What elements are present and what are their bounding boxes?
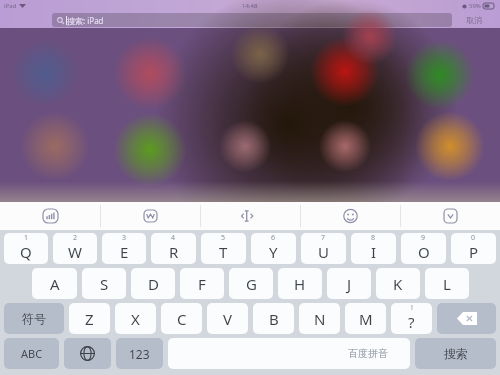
staticText: 8: [371, 233, 376, 243]
button[interactable]: Voice: [101, 202, 200, 230]
button[interactable]: !: [391, 303, 432, 334]
staticText: S: [100, 274, 109, 294]
staticText: B: [269, 309, 279, 329]
button[interactable]: Handwriting: [0, 202, 100, 230]
staticText: W: [68, 242, 82, 262]
staticText: K: [393, 274, 403, 294]
staticText: 59%: [469, 2, 481, 10]
staticText: 取消: [466, 15, 482, 25]
button[interactable]: 6: [251, 233, 296, 264]
staticText: J: [347, 274, 352, 294]
staticText: 3: [122, 233, 127, 243]
button[interactable]: 123: [116, 338, 163, 369]
staticText: Q: [20, 242, 32, 262]
button[interactable]: D: [131, 268, 175, 299]
button[interactable]: F: [180, 268, 224, 299]
button[interactable]: 百度拼音: [168, 338, 410, 369]
staticText: V: [223, 309, 233, 329]
button[interactable]: K: [376, 268, 420, 299]
staticText: M: [359, 309, 373, 329]
staticText: !: [411, 303, 413, 313]
staticText: ?: [408, 312, 415, 332]
staticText: A: [50, 274, 60, 294]
button[interactable]: V: [207, 303, 248, 334]
staticText: U: [318, 242, 329, 262]
button[interactable]: Emoji: [301, 202, 400, 230]
staticText: R: [169, 242, 179, 262]
button[interactable]: 取消: [452, 11, 496, 28]
staticText: Y: [269, 242, 278, 262]
staticText: H: [294, 274, 306, 294]
staticText: P: [469, 242, 479, 262]
staticText: 123: [129, 346, 150, 362]
staticText: 搜索: [444, 346, 468, 361]
button[interactable]: Z: [69, 303, 110, 334]
button[interactable]: 7: [301, 233, 346, 264]
button[interactable]: 8: [351, 233, 396, 264]
staticText: 4: [171, 233, 176, 243]
button[interactable]: 9: [401, 233, 446, 264]
staticText: 搜索: iPad: [67, 15, 104, 26]
staticText: E: [120, 242, 129, 262]
staticText: 1: [24, 233, 29, 243]
staticText: 7: [321, 233, 326, 243]
staticText: Z: [85, 309, 94, 329]
staticText: 14:48: [242, 2, 258, 10]
staticText: 6: [271, 233, 276, 243]
button[interactable]: N: [299, 303, 340, 334]
button[interactable]: 搜索: iPad: [52, 13, 452, 27]
staticText: I: [371, 242, 377, 262]
button[interactable]: H: [278, 268, 322, 299]
staticText: F: [198, 274, 206, 294]
staticText: 0: [471, 233, 476, 243]
staticText: L: [443, 274, 451, 294]
button[interactable]: Change keyboard: [64, 338, 111, 369]
button[interactable]: Backspace: [437, 303, 496, 334]
staticText: C: [177, 309, 187, 329]
button[interactable]: 4: [151, 233, 196, 264]
button[interactable]: Hide keyboard: [401, 202, 500, 230]
staticText: N: [314, 309, 326, 329]
staticText: 2: [73, 233, 78, 243]
button[interactable]: 3: [102, 233, 146, 264]
button[interactable]: 1: [4, 233, 48, 264]
button[interactable]: ABC: [4, 338, 59, 369]
button[interactable]: B: [253, 303, 294, 334]
staticText: 9: [421, 233, 426, 243]
staticText: D: [148, 274, 159, 294]
button[interactable]: 搜索: [415, 338, 496, 369]
button[interactable]: L: [425, 268, 469, 299]
staticText: G: [246, 274, 257, 294]
button[interactable]: M: [345, 303, 386, 334]
staticText: 符号: [22, 311, 46, 326]
button[interactable]: S: [82, 268, 126, 299]
button[interactable]: 符号: [4, 303, 64, 334]
button[interactable]: A: [32, 268, 77, 299]
staticText: O: [418, 242, 430, 262]
staticText: T: [219, 242, 228, 262]
button[interactable]: 0: [451, 233, 496, 264]
staticText: iPad: [4, 2, 17, 10]
button[interactable]: G: [229, 268, 273, 299]
button[interactable]: 5: [201, 233, 246, 264]
staticText: 5: [221, 233, 226, 243]
staticText: X: [131, 309, 140, 329]
button[interactable]: C: [161, 303, 202, 334]
button[interactable]: 2: [53, 233, 97, 264]
staticText: ABC: [21, 346, 43, 361]
button[interactable]: Cursor: [201, 202, 300, 230]
staticText: 百度拼音: [348, 347, 388, 360]
button[interactable]: J: [327, 268, 371, 299]
button[interactable]: X: [115, 303, 156, 334]
